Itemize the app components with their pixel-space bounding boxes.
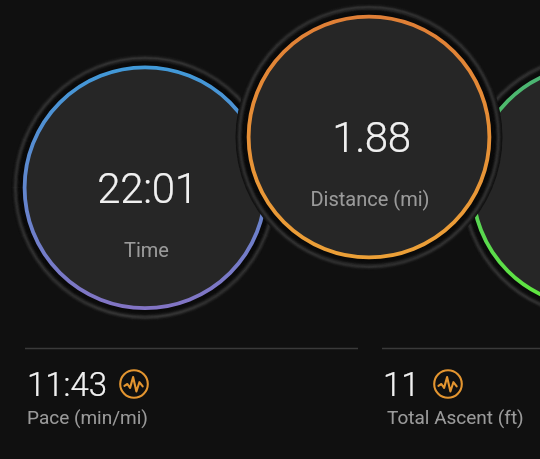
staticText: 11: [383, 365, 420, 404]
staticText: Time: [124, 238, 169, 261]
button[interactable]: 11: [385, 360, 540, 438]
button[interactable]: 11:43: [25, 360, 185, 438]
staticText: Distance (mi): [310, 187, 430, 210]
other: Activity details: [119, 369, 149, 399]
staticText: Total Ascent (ft): [387, 406, 524, 428]
other: Activity details: [433, 369, 463, 399]
button[interactable]: 1.88: [259, 19, 479, 255]
staticText: 22:01: [97, 164, 198, 213]
button[interactable]: 22:01: [35, 70, 255, 306]
staticText: Pace (min/mi): [27, 406, 148, 428]
staticText: 1.88: [332, 113, 411, 162]
staticText: 11:43: [27, 365, 108, 404]
